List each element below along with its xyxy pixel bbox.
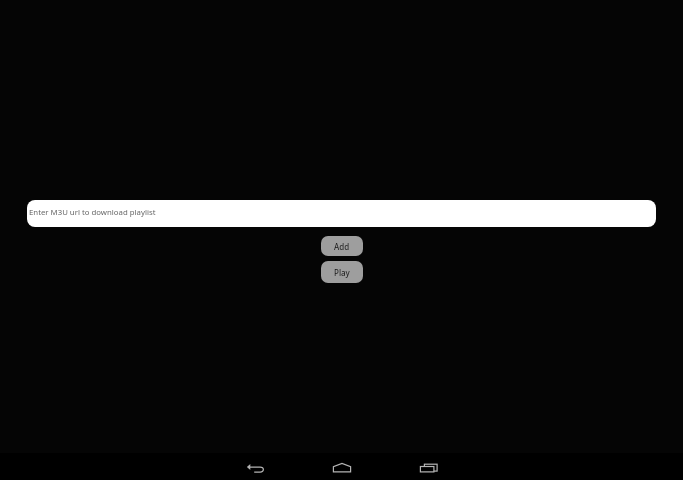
- button[interactable]: Home: [320, 453, 364, 480]
- button[interactable]: Recent apps: [407, 453, 451, 480]
- staticText: Play: [334, 267, 350, 278]
- button[interactable]: Play: [321, 261, 363, 283]
- staticText: Enter M3U url to download playlist: [29, 207, 156, 218]
- button[interactable]: Back: [233, 453, 277, 480]
- staticText: Add: [334, 241, 350, 252]
- button[interactable]: Add: [321, 236, 363, 256]
- button[interactable]: Enter M3U url to download playlist: [27, 200, 656, 227]
